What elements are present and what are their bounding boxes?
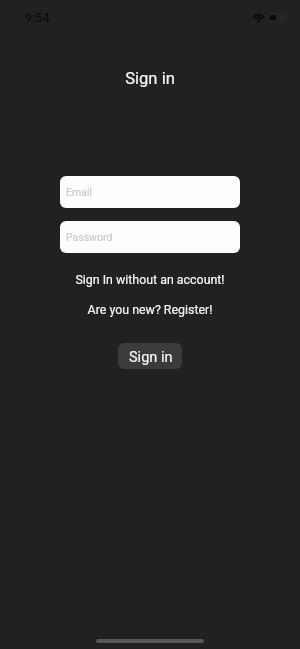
staticText: Sign in [0,69,300,88]
staticText: Sign In without an account! [0,272,300,287]
staticText: 9:54 [25,10,50,25]
button[interactable]: Sign In without an account! [0,272,300,287]
staticText: Email [66,186,92,198]
staticText: Sign in [129,349,173,366]
staticText: Password [66,231,113,243]
button[interactable]: Are you new? Register! [0,302,300,317]
other: Wi-Fi [250,12,268,24]
button[interactable]: Email [60,176,240,208]
other: Battery [268,13,292,23]
button[interactable]: Password [60,221,240,253]
button[interactable]: Sign in [118,343,182,369]
staticText: Are you new? Register! [0,302,300,317]
